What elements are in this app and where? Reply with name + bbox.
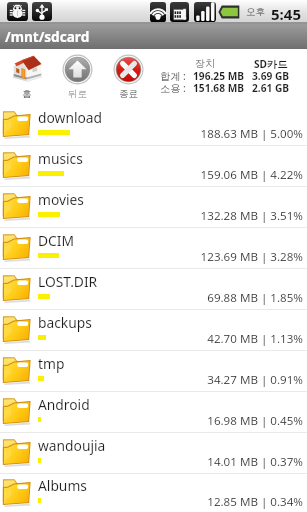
staticText: wandoujia — [38, 436, 106, 455]
staticText: 오후 — [246, 6, 265, 18]
button[interactable]: 홈 — [9, 54, 45, 100]
staticText: 132.28 MB | 3.51% — [0, 208, 303, 224]
staticText: 42.70 MB | 1.13% — [0, 331, 303, 347]
staticText: 34.27 MB | 0.91% — [0, 372, 303, 388]
staticText: musics — [38, 149, 83, 168]
staticText: 2.61 GB — [252, 81, 290, 95]
staticText: Android — [38, 395, 90, 414]
staticText: LOST.DIR — [38, 272, 98, 291]
staticText: 188.63 MB | 5.00% — [0, 126, 303, 142]
button[interactable]: LOST.DIR — [0, 269, 307, 310]
staticText: 69.88 MB | 1.85% — [0, 290, 303, 306]
staticText: 소용 : — [160, 81, 186, 95]
button[interactable]: backups — [0, 310, 307, 351]
button[interactable]: tmp — [0, 351, 307, 392]
staticText: 종료 — [119, 88, 138, 100]
staticText: 14.01 MB | 0.37% — [0, 454, 303, 470]
staticText: 장치 — [195, 57, 216, 70]
staticText: 12.85 MB | 0.34% — [0, 494, 303, 510]
staticText: 196.25 MB — [193, 69, 245, 83]
staticText: 뒤로 — [68, 88, 87, 100]
staticText: Albums — [38, 476, 87, 495]
button[interactable]: DCIM — [0, 228, 307, 269]
button[interactable]: wandoujia — [0, 433, 307, 474]
staticText: 3.69 GB — [252, 69, 290, 83]
staticText: 123.69 MB | 3.28% — [0, 249, 303, 265]
staticText: /mnt/sdcard — [5, 27, 90, 46]
button[interactable]: download — [0, 105, 307, 146]
staticText: download — [38, 108, 103, 127]
button[interactable]: Android — [0, 392, 307, 433]
staticText: 159.06 MB | 4.22% — [0, 167, 303, 183]
button[interactable]: movies — [0, 187, 307, 228]
button[interactable]: musics — [0, 146, 307, 187]
staticText: 151.68 MB — [193, 81, 245, 95]
button[interactable]: Albums — [0, 473, 307, 512]
staticText: 5:45 — [271, 4, 301, 24]
staticText: 16.98 MB | 0.45% — [0, 413, 303, 429]
staticText: tmp — [38, 354, 65, 373]
staticText: SD카드 — [254, 57, 288, 71]
staticText: DCIM — [38, 231, 74, 250]
staticText: 홈 — [22, 88, 32, 100]
staticText: 합계 : — [160, 69, 186, 83]
button[interactable]: 뒤로 — [59, 54, 95, 100]
staticText: movies — [38, 190, 84, 209]
staticText: backups — [38, 313, 92, 332]
button[interactable]: 종료 — [110, 54, 146, 100]
